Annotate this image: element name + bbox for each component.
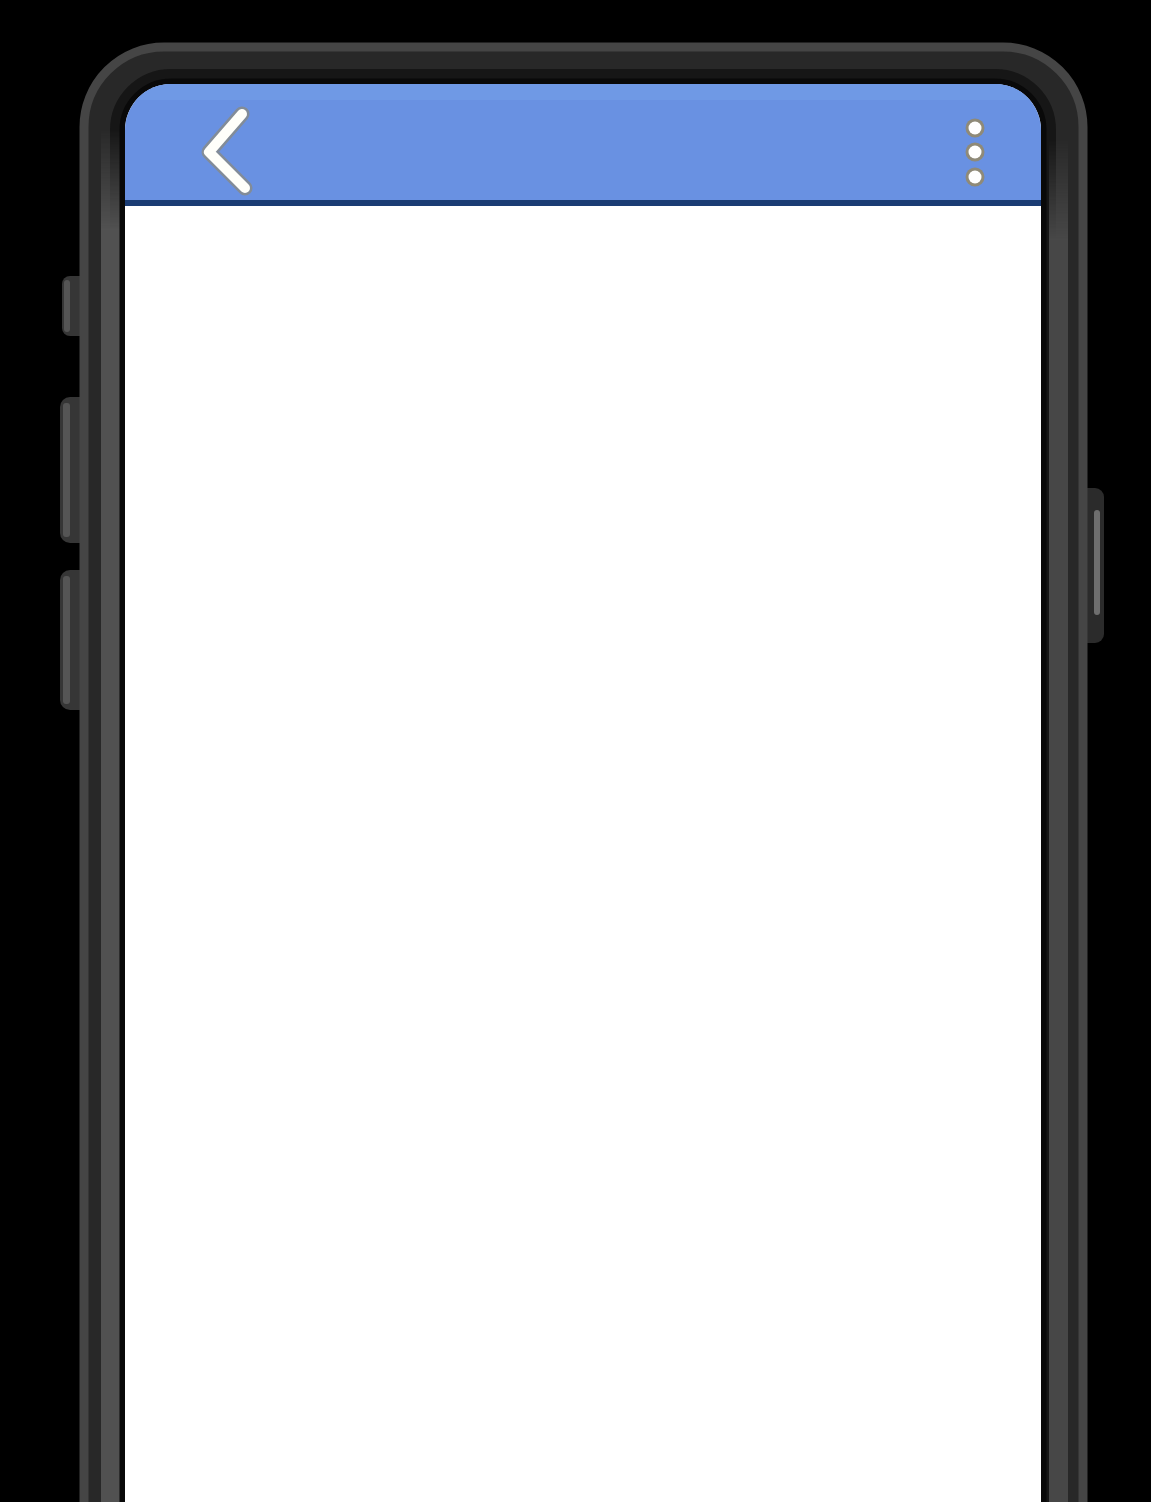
button[interactable]	[193, 104, 259, 200]
button[interactable]	[941, 110, 1009, 194]
